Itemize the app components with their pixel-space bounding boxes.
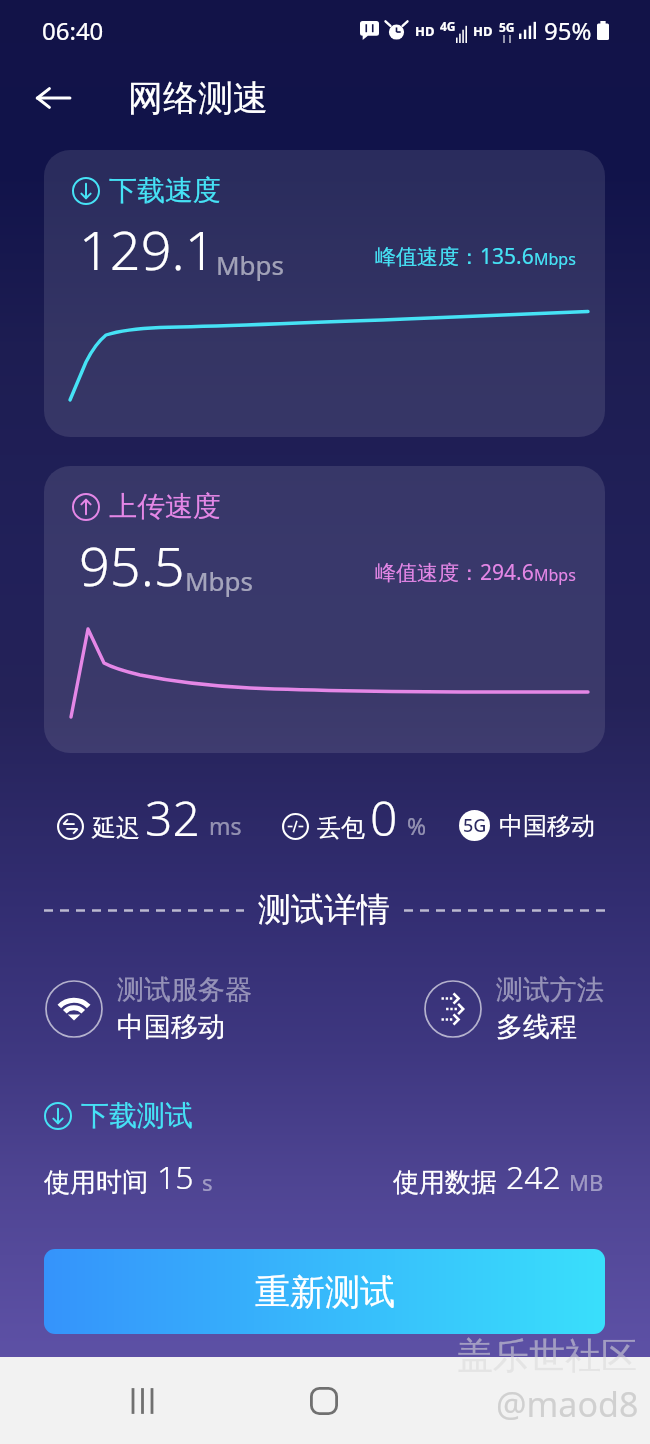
- staticText: 06:40: [42, 14, 104, 47]
- staticText: 242: [506, 1155, 561, 1199]
- staticText: @maod8: [496, 1381, 639, 1427]
- staticText: 下载测试: [81, 1098, 193, 1133]
- staticText: s: [202, 1167, 213, 1197]
- staticText: Mbps: [534, 564, 576, 586]
- staticText: Mbps: [534, 248, 576, 270]
- staticText: 盖乐世社区: [457, 1333, 637, 1378]
- staticText: 使用数据: [393, 1166, 497, 1199]
- staticText: %: [407, 810, 427, 841]
- staticText: 5G: [499, 19, 515, 35]
- staticText: 测试方法: [496, 973, 604, 1007]
- staticText: MB: [569, 1167, 604, 1197]
- staticText: 重新测试: [255, 1270, 395, 1314]
- staticText: 中国移动: [117, 1010, 225, 1044]
- staticText: 网络测速: [128, 76, 268, 120]
- staticText: Mbps: [185, 563, 254, 598]
- staticText: HD: [415, 22, 435, 40]
- button[interactable]: Recent apps: [113, 1372, 171, 1430]
- button[interactable]: Back: [508, 1372, 566, 1430]
- staticText: 丢包: [317, 813, 365, 843]
- staticText: 4G: [440, 18, 456, 34]
- staticText: 15: [157, 1155, 194, 1199]
- staticText: 多线程: [496, 1010, 577, 1044]
- button[interactable]: 重新测试: [44, 1249, 605, 1334]
- button[interactable]: 测试方法: [424, 973, 604, 1044]
- button[interactable]: Home: [295, 1372, 353, 1430]
- staticText: 峰值速度：294.6: [375, 558, 534, 587]
- button[interactable]: 上传速度: [44, 466, 605, 753]
- staticText: 延迟: [92, 813, 140, 843]
- staticText: 5G: [463, 813, 487, 838]
- staticText: 32: [145, 785, 200, 847]
- staticText: 使用时间: [44, 1166, 148, 1199]
- staticText: HD: [473, 22, 493, 40]
- staticText: 129.1: [79, 212, 216, 286]
- staticText: 95.5: [79, 528, 185, 602]
- staticText: 95%: [544, 14, 592, 47]
- button[interactable]: 下载速度: [44, 150, 605, 437]
- staticText: 0: [370, 785, 398, 847]
- staticText: 上传速度: [109, 489, 221, 524]
- staticText: ms: [209, 810, 242, 841]
- staticText: 中国移动: [499, 811, 595, 841]
- button[interactable]: Back: [26, 71, 80, 125]
- staticText: Mbps: [216, 247, 285, 282]
- button[interactable]: 测试服务器: [45, 973, 252, 1044]
- staticText: 峰值速度：135.6: [375, 242, 534, 271]
- staticText: 测试服务器: [117, 973, 252, 1007]
- staticText: 测试详情: [258, 889, 390, 931]
- staticText: 下载速度: [109, 173, 221, 208]
